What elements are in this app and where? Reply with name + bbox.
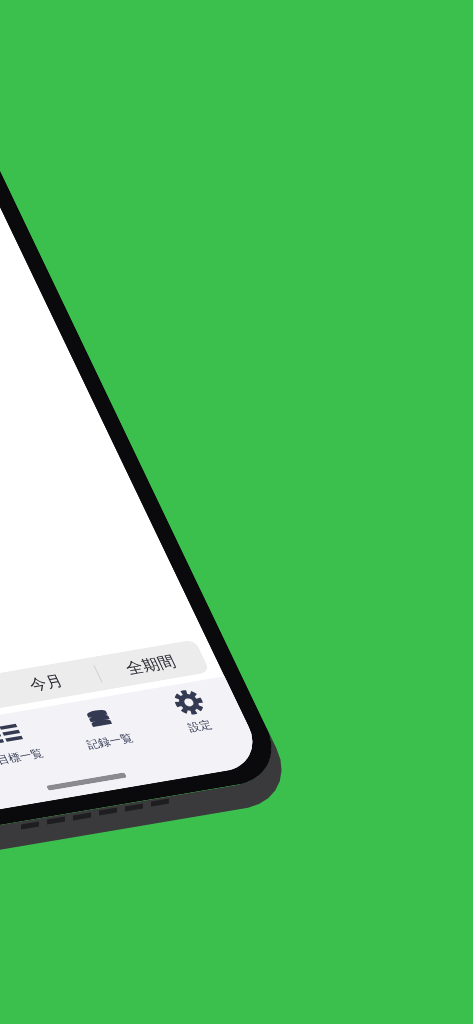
staticText: 記録一覧 — [84, 731, 135, 751]
staticText: 全期間 — [122, 652, 179, 678]
button[interactable]: 記録一覧 — [44, 692, 176, 795]
button[interactable]: 目標一覧 — [0, 707, 87, 810]
staticText: 目標一覧 — [0, 746, 45, 766]
button[interactable]: 全期間 — [90, 639, 210, 690]
button[interactable]: 設定 — [134, 676, 267, 779]
staticText: 今月 — [26, 671, 66, 695]
staticText: 設定 — [185, 717, 214, 734]
button[interactable]: 今月 — [0, 657, 105, 708]
